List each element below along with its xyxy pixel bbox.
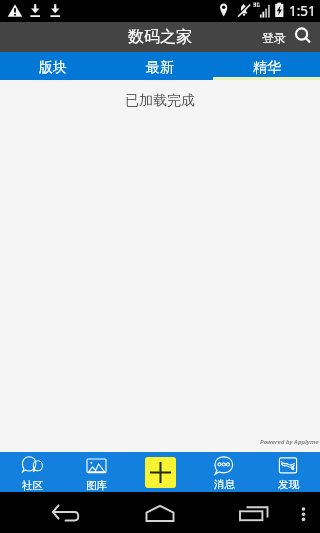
button[interactable]: 消息 (192, 452, 256, 492)
staticText: 精华 (253, 59, 281, 77)
button[interactable]: 登录 (258, 25, 290, 50)
button[interactable]: 最新 (106, 52, 213, 80)
button[interactable]: 图库 (64, 452, 128, 492)
staticText: 发现 (278, 478, 299, 491)
staticText: 社区 (22, 479, 43, 492)
button[interactable]: 发现 (256, 452, 320, 492)
button[interactable]: 社区 (0, 452, 64, 492)
staticText: 1:51 (289, 2, 316, 20)
button[interactable]: 版块 (0, 52, 106, 80)
staticText: Powered by Applyme (260, 438, 319, 446)
staticText: 已加载完成 (125, 92, 195, 110)
staticText: 消息 (214, 478, 235, 491)
button[interactable]: 精华 (213, 52, 320, 80)
button[interactable]: Add (145, 457, 176, 488)
staticText: 登录 (262, 30, 286, 45)
staticText: 版块 (39, 59, 67, 77)
staticText: 图库 (86, 479, 107, 492)
staticText: 最新 (146, 59, 174, 77)
staticText: 数码之家 (128, 27, 192, 47)
button[interactable]: Search (290, 23, 318, 51)
